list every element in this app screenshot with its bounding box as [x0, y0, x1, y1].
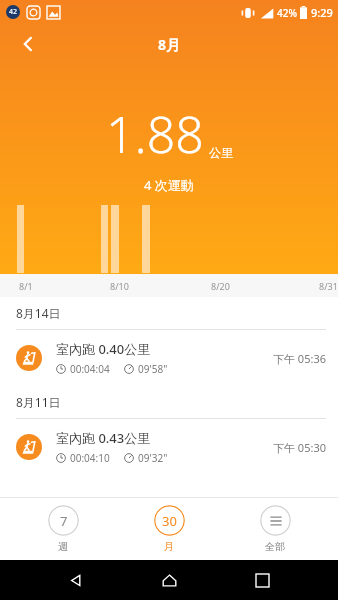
staticText: 1.88 — [106, 100, 204, 168]
button[interactable]: Back — [59, 563, 93, 597]
button[interactable]: 7 — [20, 498, 106, 560]
button[interactable]: Home — [152, 563, 186, 597]
staticText: 09'32" — [138, 451, 168, 465]
button[interactable]: 30 — [126, 498, 212, 560]
staticText: 8月 — [158, 35, 181, 54]
button[interactable]: Recents — [245, 563, 279, 597]
staticText: 月 — [164, 540, 174, 553]
staticText: 09'58" — [138, 362, 168, 376]
staticText: 8/20 — [211, 280, 230, 292]
staticText: 8月11日 — [16, 394, 61, 410]
button[interactable]: 室內跑 0.43公里 — [0, 419, 338, 475]
staticText: 公里 — [209, 145, 233, 160]
staticText: 8月14日 — [16, 305, 61, 321]
staticText: 週 — [58, 540, 68, 553]
staticText: 42% — [277, 6, 297, 20]
staticText: 下午 05:36 — [273, 351, 326, 366]
button[interactable]: 全部 — [232, 498, 318, 560]
staticText: 4 次運動 — [144, 176, 194, 194]
button[interactable]: Back — [8, 24, 48, 64]
staticText: 9:29 — [311, 5, 333, 20]
staticText: 室內跑 0.43公里 — [56, 429, 151, 447]
button[interactable]: 室內跑 0.40公里 — [0, 330, 338, 386]
staticText: 8/31 — [319, 280, 338, 292]
staticText: 全部 — [265, 540, 285, 553]
staticText: 30 — [162, 512, 177, 530]
staticText: 00:04:10 — [70, 451, 110, 465]
staticText: 8/10 — [110, 280, 129, 292]
staticText: 8/1 — [19, 280, 33, 292]
staticText: 7 — [60, 512, 68, 530]
staticText: 室內跑 0.40公里 — [56, 340, 151, 358]
staticText: 42 — [9, 7, 18, 17]
staticText: 00:04:04 — [70, 362, 110, 376]
staticText: 下午 05:30 — [273, 440, 326, 455]
